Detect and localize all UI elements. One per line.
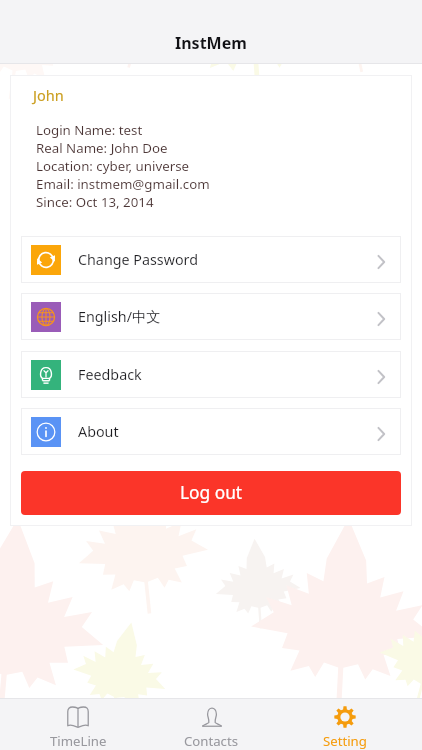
other: Change Password bbox=[373, 254, 389, 270]
staticText: Real Name: John Doe bbox=[36, 139, 168, 157]
button[interactable]: Contacts bbox=[145, 699, 278, 750]
other: Feedback bbox=[373, 369, 389, 385]
staticText: Log out bbox=[180, 481, 243, 505]
staticText: Since: Oct 13, 2014 bbox=[36, 193, 154, 211]
other: About bbox=[373, 426, 389, 442]
staticText: Location: cyber, universe bbox=[36, 157, 190, 175]
staticText: Feedback bbox=[78, 365, 142, 384]
staticText: TimeLine bbox=[50, 732, 107, 750]
button[interactable]: Feedback bbox=[21, 351, 401, 398]
staticText: About bbox=[78, 422, 119, 441]
staticText: Contacts bbox=[184, 732, 239, 750]
button[interactable]: Change Password bbox=[21, 236, 401, 283]
staticText: InstMem bbox=[175, 32, 247, 54]
button[interactable]: TimeLine bbox=[11, 699, 145, 750]
button[interactable]: Setting bbox=[278, 699, 411, 750]
staticText: Email: instmem@gmail.com bbox=[36, 175, 210, 193]
button[interactable]: About bbox=[21, 408, 401, 455]
other: Language bbox=[373, 311, 389, 327]
button[interactable]: English/中文 bbox=[21, 293, 401, 340]
staticText: English/中文 bbox=[78, 307, 161, 327]
button[interactable]: Log out bbox=[21, 471, 401, 515]
staticText: Change Password bbox=[78, 250, 198, 269]
staticText: Setting bbox=[323, 732, 367, 750]
staticText: John bbox=[33, 85, 64, 105]
staticText: Login Name: test bbox=[36, 121, 143, 139]
